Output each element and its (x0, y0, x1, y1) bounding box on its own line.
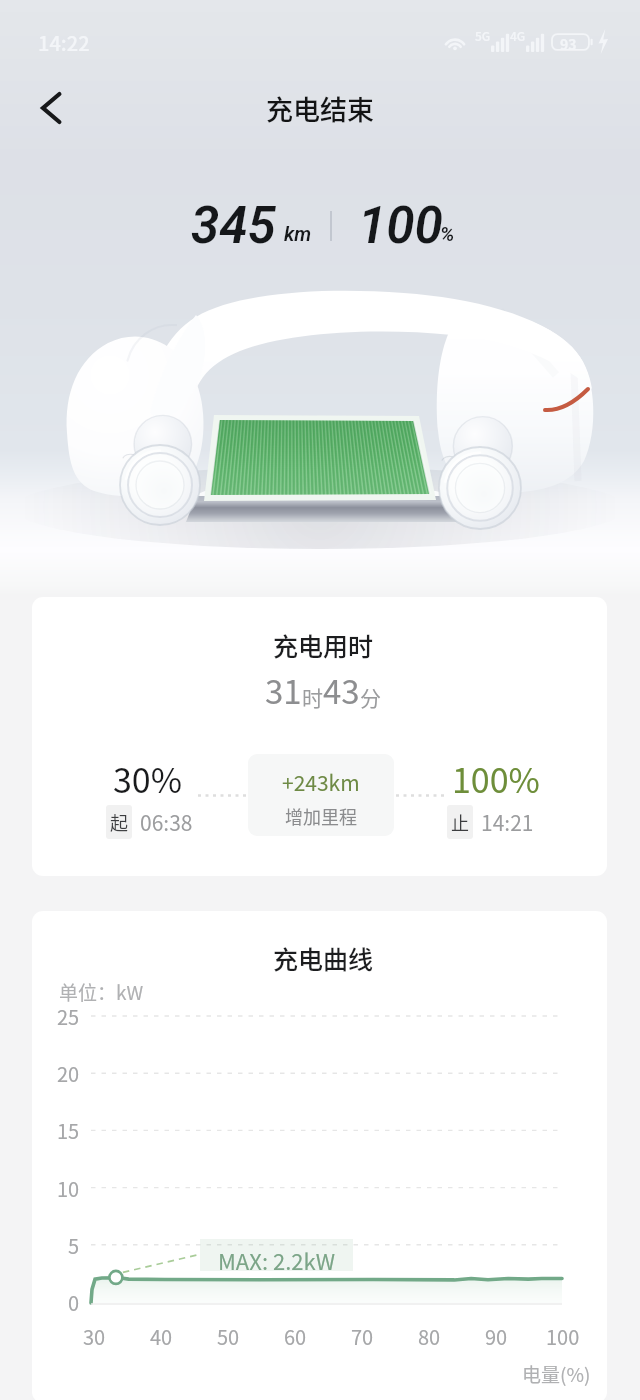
staticText: 10 (57, 1174, 80, 1202)
staticText: 起 (110, 809, 128, 835)
staticText: 31 (265, 666, 302, 714)
staticText: 分 (360, 682, 381, 712)
staticText: 止 (451, 809, 469, 835)
staticText: 06:38 (140, 807, 193, 837)
staticText: 40 (150, 1322, 173, 1350)
button[interactable]: 充电用时 (32, 597, 607, 876)
staticText: 70 (351, 1322, 374, 1350)
staticText: 345 (191, 196, 276, 256)
staticText: km (284, 222, 312, 245)
staticText: 充电用时 (273, 627, 374, 663)
staticText: 90 (485, 1322, 508, 1350)
staticText: 15 (57, 1116, 80, 1144)
staticText: 时 (302, 682, 323, 712)
staticText: 充电曲线 (273, 940, 374, 976)
staticText: 30 (83, 1322, 106, 1350)
staticText: 14:22 (38, 28, 90, 57)
staticText: 80 (418, 1322, 441, 1350)
button[interactable]: Back (23, 80, 79, 136)
staticText: 电量(%) (522, 1360, 591, 1388)
staticText: 20 (57, 1059, 80, 1087)
staticText: % (440, 222, 455, 245)
staticText: 30% (113, 754, 183, 803)
staticText: 单位：kW (59, 978, 144, 1006)
staticText: 100 (546, 1322, 580, 1350)
staticText: 100 (358, 196, 443, 256)
staticText: 0 (68, 1288, 80, 1316)
staticText: 25 (57, 1002, 80, 1030)
staticText: 5G (475, 27, 491, 44)
staticText: 增加里程 (285, 803, 357, 829)
staticText: 4G (510, 27, 526, 44)
staticText: 93 (560, 34, 577, 54)
staticText: 充电结束 (266, 89, 374, 128)
staticText: 43 (323, 666, 360, 714)
staticText: 14:21 (481, 807, 534, 837)
staticText: 100% (452, 754, 540, 803)
staticText: +243km (282, 767, 360, 797)
staticText: 5 (68, 1231, 80, 1259)
staticText: MAX: 2.2kW (218, 1244, 335, 1276)
staticText: 50 (217, 1322, 240, 1350)
staticText: 60 (284, 1322, 307, 1350)
